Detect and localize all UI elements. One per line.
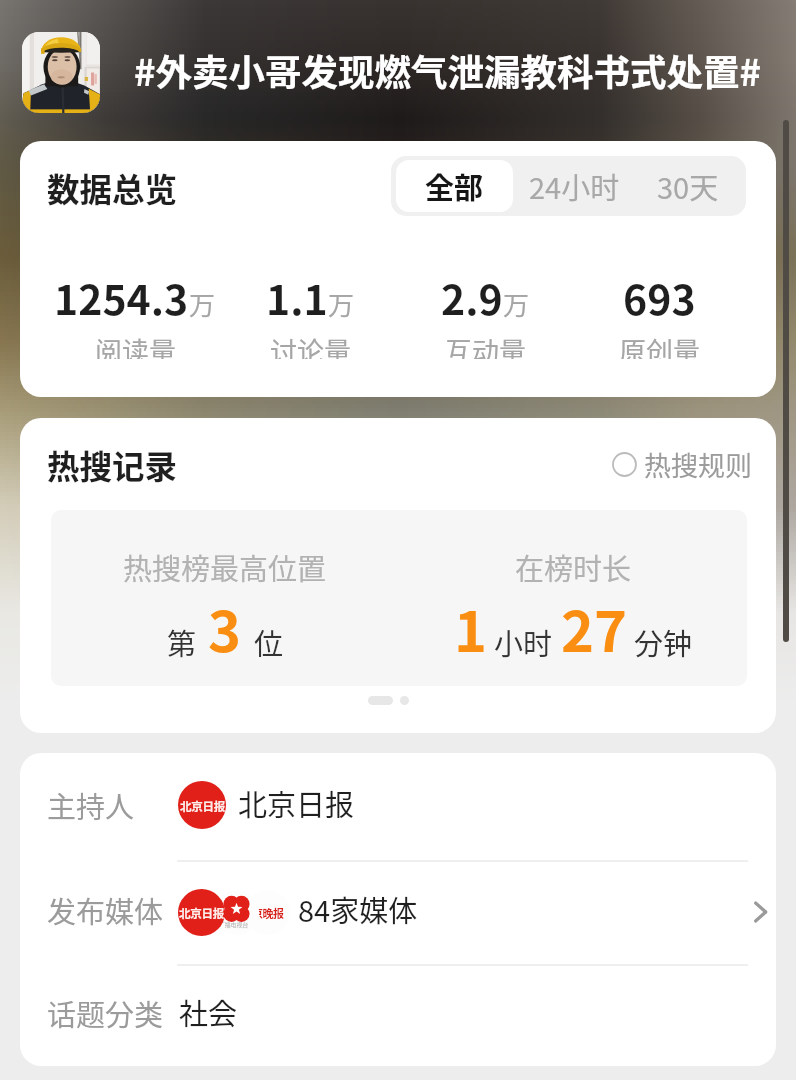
- staticText: 话题分类: [47, 992, 164, 1034]
- staticText: 社会: [179, 991, 238, 1033]
- staticText: 热搜记录: [47, 441, 178, 488]
- button[interactable]: Topic image: [22, 32, 100, 113]
- staticText: 数据总览: [47, 164, 178, 211]
- staticText: 1: [454, 587, 488, 668]
- staticText: 27: [561, 587, 628, 668]
- staticText: 3: [208, 587, 242, 668]
- staticText: 北京日报: [179, 905, 224, 922]
- staticText: 30天: [657, 165, 719, 207]
- staticText: 24小时: [529, 165, 620, 207]
- staticText: #外卖小哥发现燃气泄漏教科书式处置#: [134, 44, 762, 97]
- button[interactable]: 30天: [635, 160, 741, 212]
- button[interactable]: 发布媒体: [20, 861, 776, 964]
- staticText: 在榜时长: [515, 546, 632, 588]
- staticText: 热搜榜最高位置: [123, 546, 327, 588]
- staticText: 原创量: [619, 331, 700, 359]
- staticText: 693: [623, 267, 696, 326]
- staticText: 全部: [425, 165, 484, 207]
- button[interactable]: 全部: [396, 160, 513, 212]
- staticText: 热搜规则: [644, 445, 752, 484]
- staticText: 万: [503, 285, 530, 323]
- staticText: 1254.3: [54, 267, 189, 326]
- staticText: 84家媒体: [298, 888, 418, 930]
- staticText: 万: [189, 285, 216, 323]
- staticText: 北京日报: [238, 782, 355, 824]
- staticText: 分钟: [634, 621, 693, 663]
- staticText: 广播电视台: [219, 920, 249, 929]
- button[interactable]: 热搜规则: [612, 445, 752, 484]
- staticText: 第: [167, 621, 197, 663]
- staticText: 阅读量: [95, 331, 176, 359]
- staticText: 2.9: [441, 267, 503, 326]
- staticText: 京晚报: [252, 905, 284, 921]
- button[interactable]: 话题分类: [20, 965, 776, 1066]
- staticText: 互动量: [445, 331, 526, 359]
- staticText: 1.1: [266, 267, 328, 326]
- staticText: 主持人: [47, 784, 135, 826]
- staticText: 位: [254, 621, 284, 663]
- button[interactable]: 24小时: [515, 160, 633, 212]
- staticText: 北京日报: [180, 798, 225, 815]
- staticText: 小时: [494, 621, 553, 663]
- button[interactable]: 主持人: [20, 753, 776, 860]
- staticText: 万: [328, 285, 355, 323]
- staticText: 发布媒体: [47, 889, 164, 931]
- other: More media: [749, 901, 771, 923]
- staticText: 讨论量: [270, 331, 351, 359]
